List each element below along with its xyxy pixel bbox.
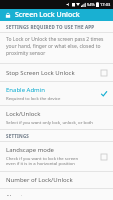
staticText: SETTINGS [6, 133, 30, 139]
button[interactable]: Number of Lock/Unlock [0, 172, 113, 188]
staticText: About me [6, 193, 34, 196]
button[interactable]: About me [0, 189, 113, 200]
staticText: Enable Admin [6, 86, 45, 94]
staticText: Screen Lock Unlock [15, 10, 80, 20]
staticText: 17:03 [100, 2, 111, 7]
staticText: Lock/Unlock [6, 110, 41, 118]
staticText: Landscape mode [6, 146, 54, 154]
staticText: Select if you want only lock, unlock, or… [6, 119, 94, 125]
button[interactable]: Enable Admin [0, 82, 113, 105]
staticText: To Lock or Unlock the screen pass 2 time… [6, 36, 107, 57]
staticText: 54% [87, 2, 95, 7]
staticText: Required to lock the device [6, 95, 61, 101]
staticText: Stop Screen Lock Unlock [6, 69, 75, 77]
staticText: Check if you want to lock the screen eve… [6, 155, 79, 167]
staticText: Number of Lock/Unlock [6, 176, 73, 184]
button[interactable]: App icon [4, 11, 12, 19]
staticText: SETTINGS REQUIRED TO USE THE APP [6, 24, 95, 30]
button[interactable]: Stop Screen Lock Unlock [0, 64, 113, 81]
button[interactable]: Lock/Unlock [0, 106, 113, 129]
button[interactable]: Landscape mode [0, 142, 113, 171]
